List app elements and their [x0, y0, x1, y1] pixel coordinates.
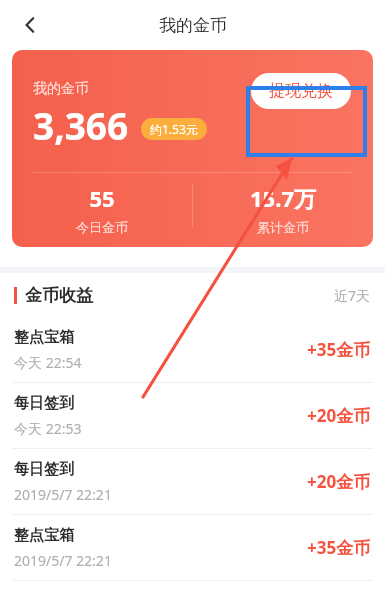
staticText: +20金币 [307, 470, 371, 493]
staticText: 今天 22:54 [14, 353, 82, 372]
staticText: 15.7万 [250, 183, 316, 213]
staticText: +20金币 [307, 404, 371, 427]
staticText: +35金币 [307, 338, 371, 361]
staticText: 2019/5/7 22:21 [14, 485, 112, 504]
staticText: 约1.53元 [150, 121, 198, 137]
button[interactable]: 15.7万 [193, 183, 373, 235]
staticText: 累计金币 [257, 219, 309, 235]
button[interactable]: Back [8, 3, 52, 47]
staticText: 每日签到 [14, 460, 74, 479]
staticText: 金币收益 [25, 285, 93, 306]
button[interactable]: 每日签到 [0, 383, 385, 448]
staticText: 今天 22:53 [14, 419, 82, 438]
staticText: 今日金币 [76, 219, 128, 235]
staticText: 我的金币 [33, 80, 89, 98]
staticText: 3,366 [33, 100, 129, 150]
staticText: 近7天 [334, 286, 371, 305]
staticText: 每日签到 [14, 394, 74, 413]
button[interactable]: 整点宝箱 [0, 515, 385, 580]
staticText: 2019/5/7 22:21 [14, 551, 112, 570]
staticText: 55 [89, 183, 115, 213]
staticText: 提现兑换 [269, 81, 333, 101]
button[interactable]: 整点宝箱 [0, 317, 385, 382]
button[interactable]: 每日签到 [0, 449, 385, 514]
staticText: 我的金币 [159, 15, 227, 36]
staticText: 整点宝箱 [14, 526, 74, 545]
button[interactable]: 55 [12, 183, 192, 235]
staticText: +35金币 [307, 536, 371, 559]
button[interactable]: 提现兑换 [251, 73, 351, 109]
staticText: 整点宝箱 [14, 328, 74, 347]
